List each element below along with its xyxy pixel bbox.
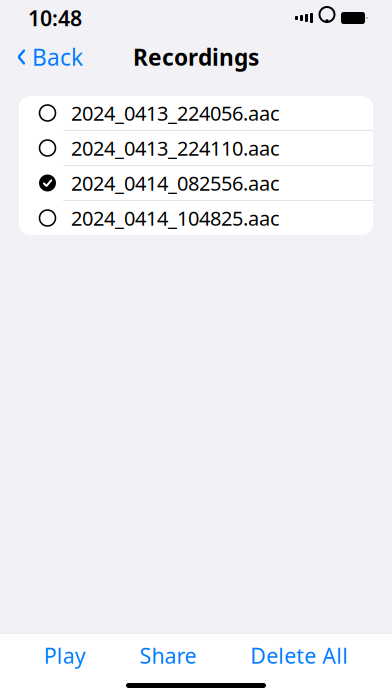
button[interactable]: Delete All	[240, 631, 358, 680]
staticText: 2024_0414_104825.aac	[71, 205, 280, 231]
staticText: Back	[32, 42, 83, 72]
button[interactable]: 2024_0413_224056.aac	[19, 96, 373, 130]
button[interactable]: Play	[34, 631, 96, 680]
button[interactable]: 2024_0414_082556.aac	[19, 166, 373, 200]
staticText: Play	[44, 641, 86, 670]
staticText: 2024_0413_224110.aac	[71, 135, 280, 161]
button[interactable]: 2024_0414_104825.aac	[19, 201, 373, 235]
button[interactable]: Share	[129, 631, 206, 680]
staticText: 10:48	[28, 4, 82, 32]
staticText: 2024_0413_224056.aac	[71, 100, 280, 126]
button[interactable]: 2024_0413_224110.aac	[19, 131, 373, 165]
staticText: 2024_0414_082556.aac	[71, 170, 280, 196]
staticText: Recordings	[133, 42, 259, 72]
button[interactable]: Back	[10, 36, 89, 78]
staticText: Delete All	[250, 641, 348, 670]
staticText: Share	[139, 641, 196, 670]
